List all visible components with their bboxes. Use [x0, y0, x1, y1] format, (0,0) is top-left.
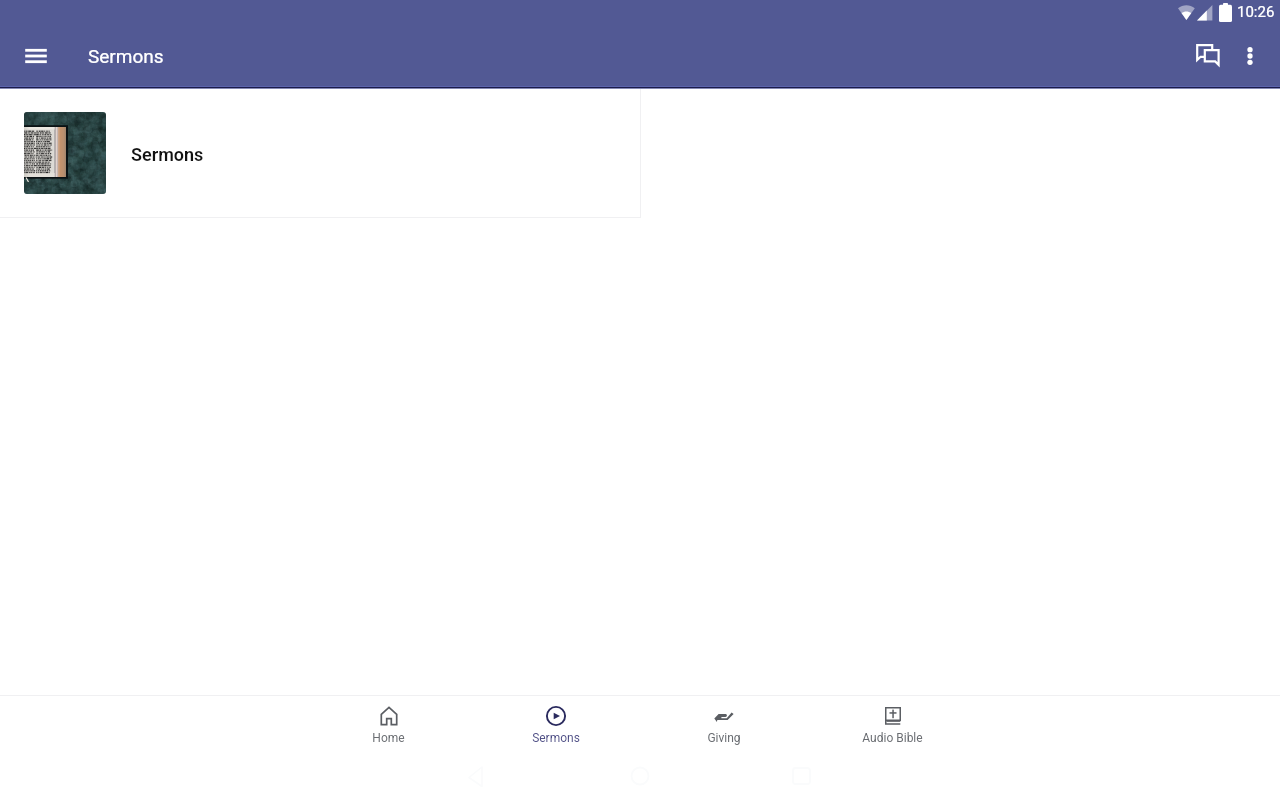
- staticText: Audio Bible: [862, 731, 923, 745]
- button[interactable]: More options: [1226, 32, 1274, 80]
- button[interactable]: Sermons: [0, 89, 640, 217]
- button[interactable]: Audio Bible: [808, 696, 976, 756]
- button[interactable]: Home: [304, 696, 472, 756]
- button[interactable]: Chat: [1184, 32, 1232, 80]
- button[interactable]: Giving: [640, 696, 808, 756]
- staticText: Sermons: [88, 45, 164, 67]
- staticText: 10:26: [1237, 3, 1275, 21]
- button[interactable]: Sermons: [472, 696, 640, 756]
- staticText: Home: [372, 731, 405, 745]
- staticText: Giving: [707, 731, 741, 745]
- staticText: Sermons: [532, 731, 580, 745]
- button[interactable]: Open navigation drawer: [12, 32, 60, 80]
- staticText: Sermons: [131, 144, 204, 165]
